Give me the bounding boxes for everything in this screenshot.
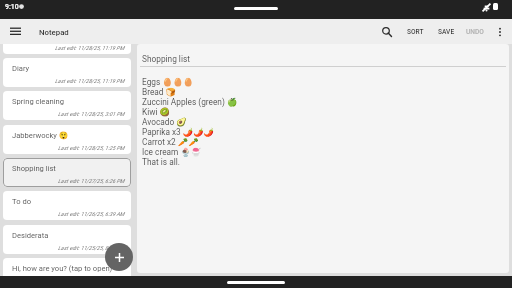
button[interactable]: Hi, how are you? (tap to open) [3,258,131,276]
staticText: To do [12,197,31,206]
staticText: Eggs 🥚🥚🥚 Bread 🍞 Zuccini Apples (green) … [142,77,238,167]
staticText: Diary [12,64,30,73]
staticText: Last edit: 11/28/25, 1:25 PM [58,145,125,151]
button[interactable]: SORT [402,21,429,43]
staticText: Shopping list [142,54,190,64]
staticText: SORT [407,28,424,36]
staticText: Last edit: 11/28/25, 3:01 PM [58,111,125,117]
staticText: Desiderata [12,231,49,240]
button[interactable]: UNDO [461,21,489,43]
button[interactable]: More options [489,21,511,43]
button[interactable]: Spring cleaning [3,91,131,120]
staticText: Last edit: 11/27/25, 6:26 PM [58,178,125,184]
staticText: 9:10 [5,3,19,11]
staticText: Jabberwocky 😲 [12,131,69,140]
staticText: Last edit: 11/28/25, 11:19 PM [55,78,125,84]
button[interactable]: Desiderata [3,225,131,254]
staticText: SAVE [438,28,455,36]
staticText: Hi, how are you? (tap to open) [12,264,113,273]
staticText: Last edit: 11/25/25, 8:05 PM [58,245,125,251]
button[interactable]: Shopping list [3,158,131,187]
button[interactable]: SAVE [433,21,460,43]
button[interactable]: Diary [3,58,131,87]
staticText: Notepad [39,28,69,37]
button[interactable]: Jabberwocky 😲 [3,125,131,154]
button[interactable]: Shopping list [137,44,509,273]
staticText: Last edit: 11/28/25, 11:19 PM [55,45,125,51]
staticText: Last edit: 11/26/25, 6:39 AM [58,211,125,217]
button[interactable]: To do [3,191,131,220]
staticText: Shopping list [12,164,56,173]
button[interactable]: Open navigation drawer [2,19,28,44]
staticText: UNDO [466,28,484,36]
button[interactable]: Add new note [105,243,133,271]
button[interactable]: Search [374,19,399,44]
button[interactable]: Nothing [3,44,131,54]
staticText: Spring cleaning [12,97,65,106]
